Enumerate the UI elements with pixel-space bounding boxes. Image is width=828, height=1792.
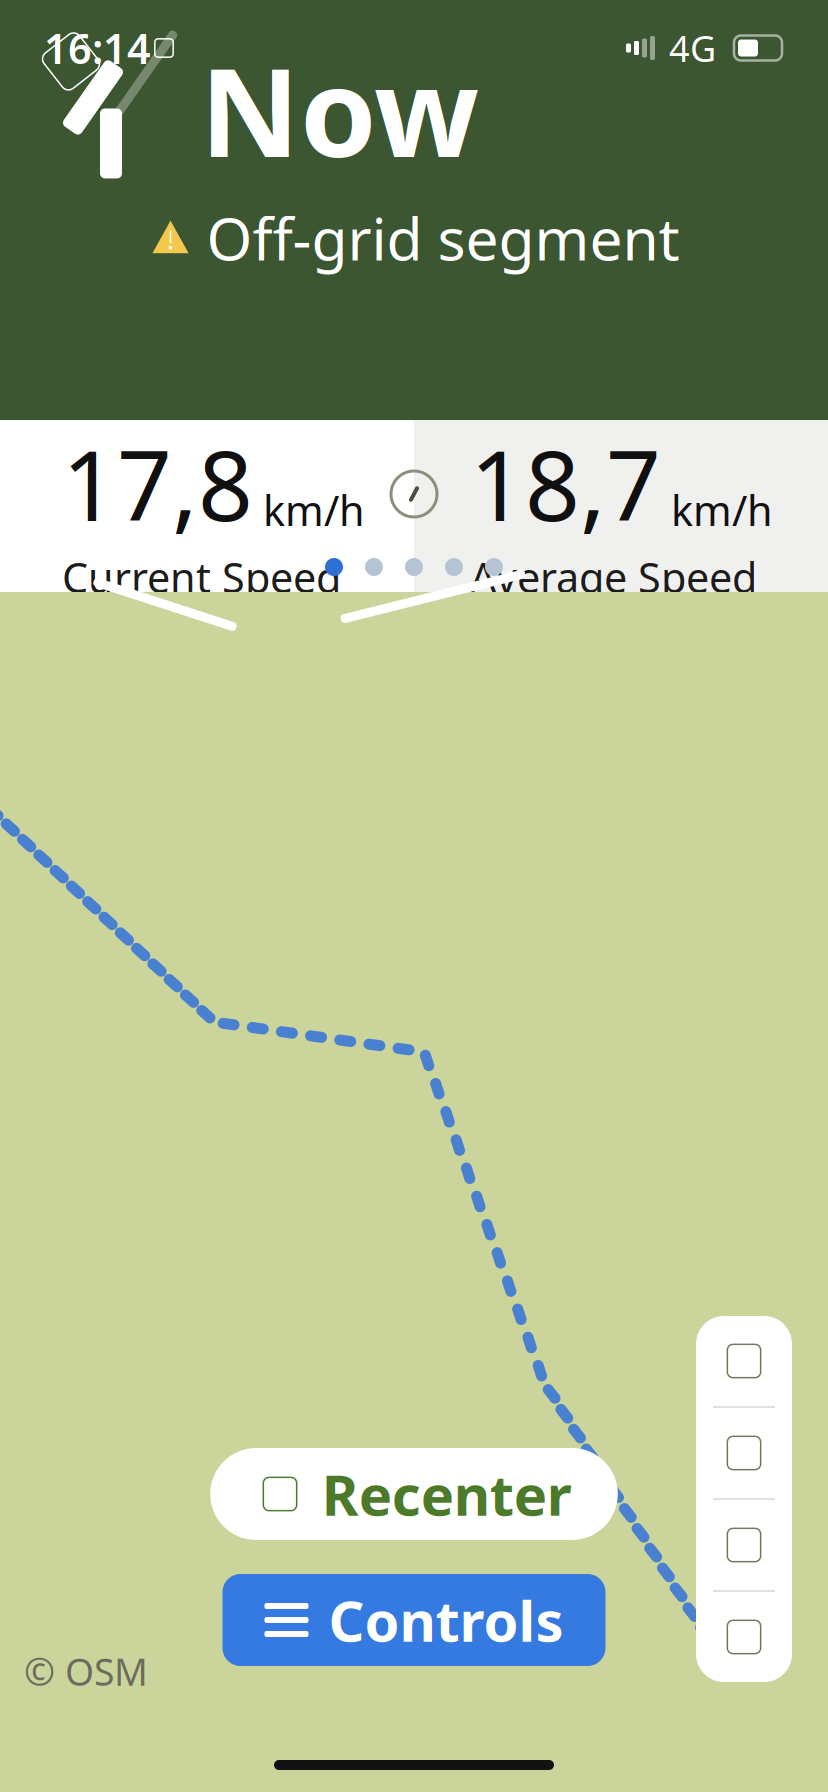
staticText: km/h — [671, 483, 773, 537]
staticText: 16:14 — [44, 21, 151, 75]
button[interactable]: Controls — [222, 1574, 605, 1666]
staticText: Controls — [328, 1583, 563, 1657]
button[interactable]: Locate — [696, 1500, 792, 1590]
staticText: 18,7 — [470, 420, 661, 547]
button[interactable]: 18,7 — [414, 420, 828, 592]
staticText: Current Speed — [62, 549, 341, 604]
button[interactable]: 17,8 — [0, 420, 414, 592]
staticText: 17,8 — [62, 420, 253, 547]
button[interactable]: Camera — [696, 1408, 792, 1498]
button[interactable]: Compass — [696, 1592, 792, 1682]
staticText: km/h — [263, 483, 365, 537]
button[interactable]: Recenter — [210, 1448, 618, 1540]
staticText: Average Speed — [470, 549, 757, 604]
staticText: Off-grid segment — [206, 199, 679, 277]
staticText: Recenter — [322, 1457, 572, 1531]
staticText: © OSM — [24, 1646, 148, 1696]
button[interactable]: Map layers — [696, 1316, 792, 1406]
staticText: Now — [200, 28, 479, 191]
staticText: 4G — [669, 24, 716, 72]
